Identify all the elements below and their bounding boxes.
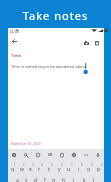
staticText: e	[29, 166, 32, 173]
button[interactable]: t	[44, 162, 54, 174]
staticText: 9	[91, 163, 93, 167]
button[interactable]: y	[54, 162, 64, 174]
staticText: 4	[41, 163, 43, 167]
staticText: 8	[81, 163, 83, 167]
button[interactable]: Google	[8, 149, 20, 160]
button[interactable]: e	[26, 162, 35, 174]
staticText: 3	[32, 163, 34, 167]
staticText: y	[58, 166, 61, 173]
staticText: w	[20, 166, 24, 173]
staticText: 0	[101, 163, 103, 167]
staticText: a	[16, 177, 19, 182]
button[interactable]: f	[40, 173, 49, 182]
staticText: 2	[23, 163, 25, 167]
button[interactable]: a	[13, 173, 22, 182]
staticText: 7	[71, 163, 73, 167]
button[interactable]: d	[31, 173, 40, 182]
button[interactable]: w	[17, 162, 26, 174]
button[interactable]: Delete	[92, 38, 101, 47]
staticText: l	[93, 177, 95, 182]
button[interactable]: Clipboard	[56, 149, 68, 160]
staticText: d	[34, 177, 38, 182]
button[interactable]: l	[89, 173, 99, 182]
staticText: 12:30	[9, 29, 19, 34]
button[interactable]: k	[79, 173, 89, 182]
staticText: t	[48, 166, 50, 173]
button[interactable]: h	[59, 173, 69, 182]
button[interactable]: i	[74, 162, 84, 174]
staticText: 6	[61, 163, 63, 167]
button[interactable]: Add image	[82, 38, 91, 47]
staticText: Edited Jun 18, 2020	[11, 141, 41, 145]
staticText: k	[83, 177, 86, 182]
staticText: 1	[14, 163, 16, 167]
button[interactable]: g	[49, 173, 59, 182]
staticText: s	[25, 177, 28, 182]
staticText: GIF	[48, 153, 53, 157]
staticText: Time is something to be wondered about.	[11, 64, 88, 69]
staticText: g	[52, 177, 56, 182]
button[interactable]: j	[69, 173, 79, 182]
button[interactable]: GIF	[44, 149, 56, 160]
staticText: f	[44, 177, 46, 182]
button[interactable]: u	[64, 162, 74, 174]
button[interactable]: o	[84, 162, 94, 174]
staticText: j	[73, 177, 75, 182]
button[interactable]: Search	[20, 149, 32, 160]
staticText: 5	[51, 163, 53, 167]
button[interactable]: r	[35, 162, 44, 174]
staticText: Take notes	[0, 8, 111, 23]
staticText: Time	[11, 53, 22, 59]
button[interactable]: More options	[80, 149, 92, 160]
button[interactable]: Stickers	[32, 149, 44, 160]
button[interactable]: s	[22, 173, 31, 182]
staticText: i	[78, 166, 80, 173]
staticText: u	[67, 166, 71, 173]
staticText: o	[87, 166, 91, 173]
button[interactable]: Voice input	[92, 149, 104, 160]
button[interactable]: p	[94, 162, 104, 174]
staticText: q	[11, 166, 15, 173]
button[interactable]: Translate	[68, 149, 80, 160]
button[interactable]: q	[8, 162, 17, 174]
staticText: r	[38, 166, 41, 173]
button[interactable]: Back	[10, 37, 19, 46]
staticText: h	[62, 177, 66, 182]
staticText: p	[97, 166, 101, 173]
